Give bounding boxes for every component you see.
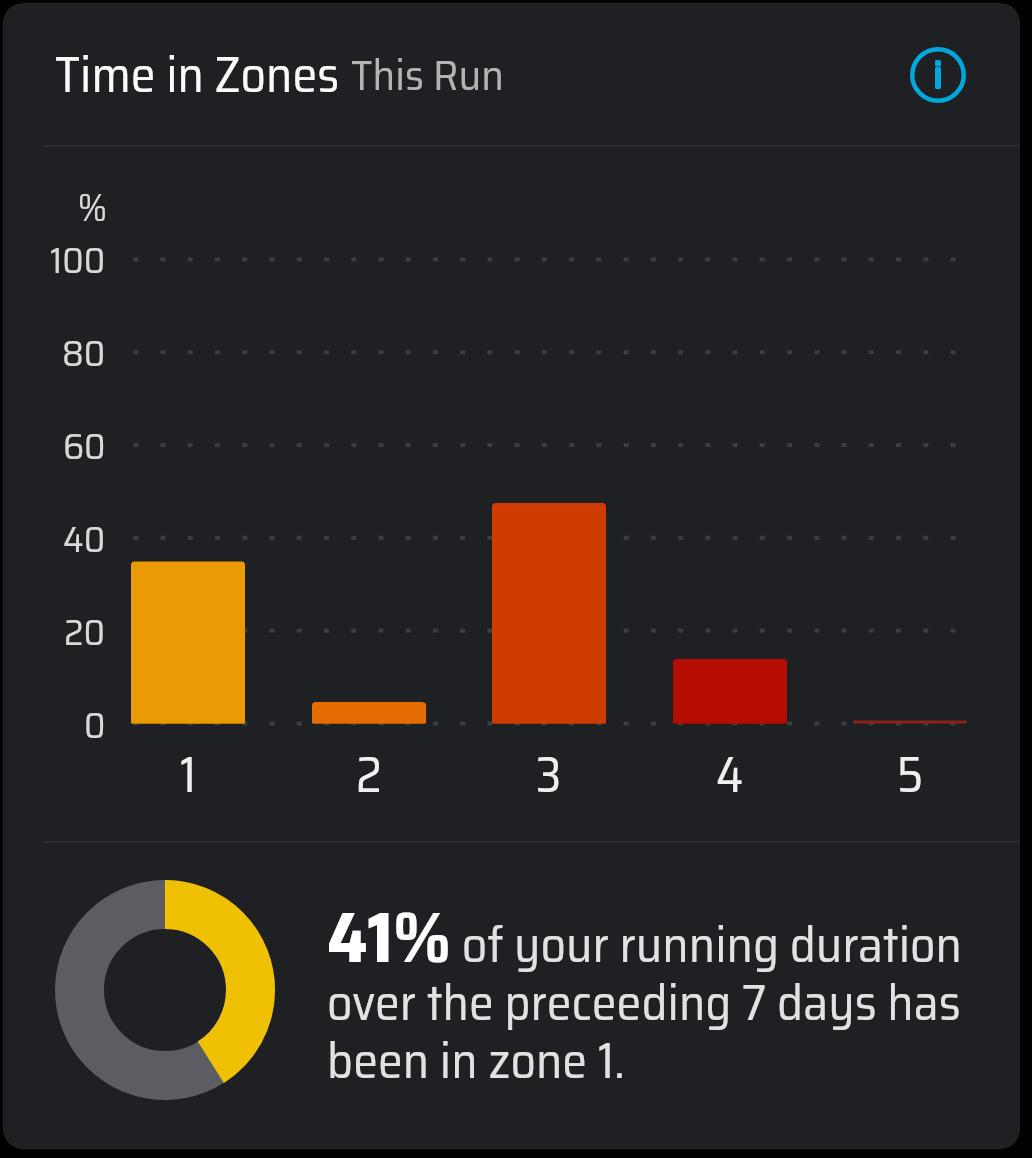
staticText: 2 [356,736,382,792]
staticText: 5 [897,736,924,792]
staticText: 41% of your running duration over the pr… [327,880,965,1100]
staticText: % [78,177,107,223]
staticText: Time in Zones [55,35,340,114]
staticText: This Run [351,41,504,109]
staticText: 0 [84,696,106,748]
staticText: 4 [716,736,744,792]
staticText: 40 [63,510,106,562]
button[interactable]: Information [907,44,969,106]
staticText: 60 [63,417,106,469]
staticText: 1 [180,736,197,792]
staticText: 3 [536,736,562,792]
staticText: 100 [50,231,106,283]
staticText: 80 [62,324,106,376]
staticText: 20 [64,603,106,655]
